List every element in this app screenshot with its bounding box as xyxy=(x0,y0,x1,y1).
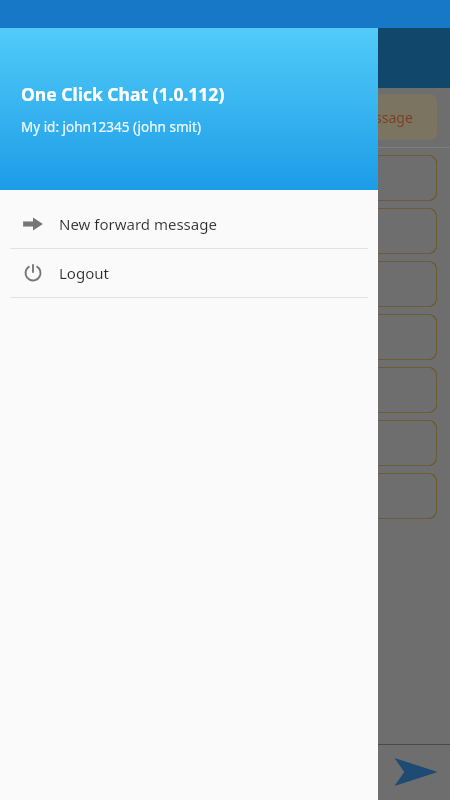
button[interactable] xyxy=(300,261,437,307)
button[interactable]: Send xyxy=(388,750,442,794)
button[interactable]: New forward message xyxy=(0,200,378,248)
button[interactable]: notification xyxy=(300,367,437,413)
button[interactable] xyxy=(300,473,437,519)
staticText: Logout xyxy=(59,263,109,283)
button[interactable] xyxy=(300,314,437,360)
button[interactable] xyxy=(300,155,437,201)
staticText: One Click Chat (1.0.112) xyxy=(21,82,225,106)
button[interactable] xyxy=(300,208,437,254)
staticText: message xyxy=(354,108,413,127)
button[interactable]: message xyxy=(330,94,437,140)
staticText: My id: john12345 (john smit) xyxy=(21,118,201,136)
staticText: New forward message xyxy=(59,214,217,234)
staticText: notification xyxy=(304,381,379,400)
button[interactable]: Logout xyxy=(0,249,378,297)
button[interactable] xyxy=(300,420,437,466)
